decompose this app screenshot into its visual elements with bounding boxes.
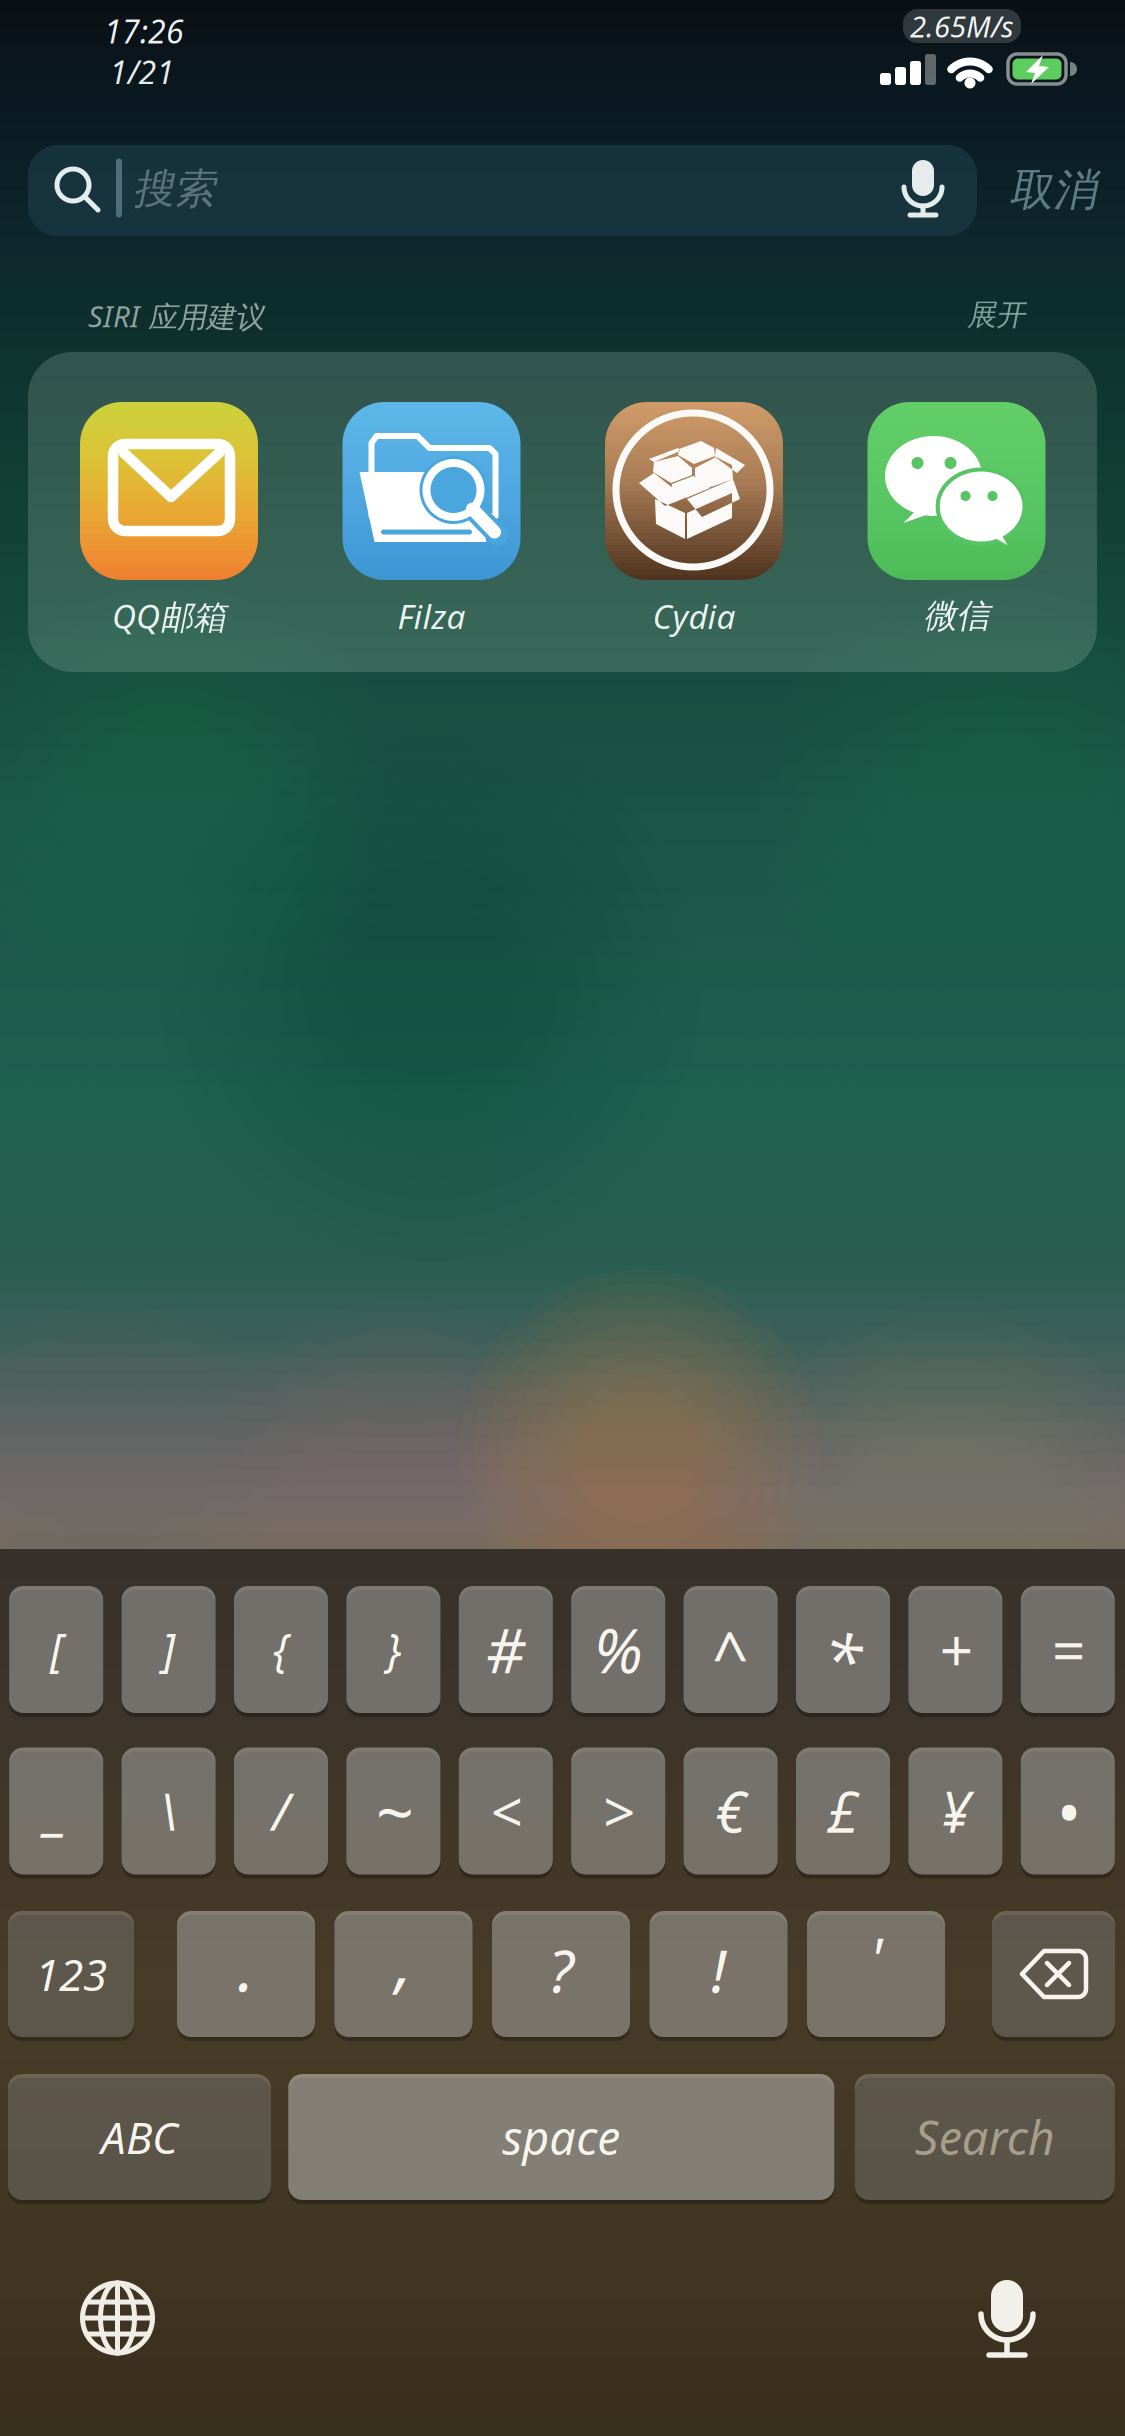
staticText: ?: [548, 1931, 573, 2009]
staticText: Cydia: [652, 594, 735, 638]
button[interactable]: 123: [8, 1911, 134, 2037]
staticText: SIRI 应用建议: [88, 296, 264, 335]
staticText: 123: [35, 1945, 107, 2003]
staticText: >: [602, 1774, 634, 1848]
staticText: space: [502, 2106, 620, 2168]
button[interactable]: Next keyboard: [77, 2278, 157, 2358]
staticText: ¥: [940, 1774, 971, 1848]
staticText: <: [490, 1774, 522, 1848]
button[interactable]: ~: [346, 1747, 440, 1874]
staticText: }: [385, 1619, 401, 1680]
staticText: 展开: [967, 297, 1025, 333]
button[interactable]: 微信: [867, 402, 1045, 642]
staticText: =: [1051, 1610, 1085, 1688]
button[interactable]: /: [234, 1747, 328, 1874]
button[interactable]: \: [122, 1747, 216, 1874]
button[interactable]: 取消: [988, 145, 1118, 235]
button[interactable]: ABC: [8, 2074, 271, 2200]
button[interactable]: ?: [492, 1911, 630, 2037]
button[interactable]: >: [571, 1747, 665, 1874]
button[interactable]: #: [459, 1586, 553, 1713]
button[interactable]: Cydia: [605, 402, 783, 642]
staticText: 1/21: [109, 51, 174, 93]
button[interactable]: ]: [122, 1586, 216, 1713]
button[interactable]: ': [807, 1911, 945, 2037]
button[interactable]: Dictate: [888, 148, 958, 228]
staticText: 2.65M/s: [910, 6, 1014, 45]
staticText: %: [594, 1609, 643, 1690]
button[interactable]: =: [1021, 1586, 1115, 1713]
button[interactable]: Filza: [342, 402, 520, 642]
staticText: ABC: [101, 2108, 178, 2166]
staticText: {: [273, 1619, 289, 1680]
staticText: 搜索: [133, 164, 215, 214]
staticText: 17:26: [104, 10, 184, 52]
staticText: ]: [162, 1619, 175, 1680]
staticText: ~: [374, 1767, 412, 1855]
button[interactable]: .: [177, 1911, 315, 2037]
button[interactable]: _: [9, 1747, 103, 1874]
button[interactable]: %: [571, 1586, 665, 1713]
staticText: QQ邮箱: [112, 594, 226, 638]
button[interactable]: QQ邮箱: [80, 402, 258, 642]
staticText: Search: [915, 2106, 1055, 2168]
button[interactable]: 展开: [951, 290, 1041, 340]
staticText: #: [486, 1609, 526, 1690]
staticText: \: [160, 1777, 178, 1845]
button[interactable]: ^: [684, 1586, 778, 1713]
button[interactable]: space: [288, 2074, 834, 2200]
staticText: Filza: [397, 594, 465, 638]
staticText: .: [237, 1922, 254, 2010]
staticText: [: [50, 1619, 63, 1680]
staticText: ': [869, 1919, 882, 1997]
staticText: •: [1056, 1768, 1080, 1853]
staticText: *: [824, 1612, 862, 1705]
staticText: +: [938, 1610, 972, 1688]
staticText: 取消: [1009, 163, 1097, 217]
button[interactable]: €: [684, 1747, 778, 1874]
staticText: _: [45, 1770, 67, 1844]
button[interactable]: +: [908, 1586, 1002, 1713]
button[interactable]: •: [1021, 1747, 1115, 1874]
staticText: !: [711, 1931, 726, 2009]
button[interactable]: *: [796, 1586, 890, 1713]
button[interactable]: ¥: [908, 1747, 1002, 1874]
staticText: ^: [712, 1611, 749, 1696]
button[interactable]: {: [234, 1586, 328, 1713]
button[interactable]: Search: [855, 2074, 1115, 2200]
button[interactable]: Delete: [992, 1911, 1115, 2037]
button[interactable]: }: [346, 1586, 440, 1713]
staticText: /: [272, 1777, 290, 1845]
staticText: £: [827, 1774, 858, 1848]
staticText: ,: [395, 1916, 412, 2004]
button[interactable]: £: [796, 1747, 890, 1874]
button[interactable]: !: [649, 1911, 787, 2037]
staticText: 微信: [923, 595, 989, 636]
button[interactable]: ,: [334, 1911, 472, 2037]
button[interactable]: Dictate: [962, 2280, 1052, 2360]
button[interactable]: 搜索: [28, 145, 977, 236]
staticText: €: [715, 1774, 746, 1848]
button[interactable]: <: [459, 1747, 553, 1874]
button[interactable]: [: [9, 1586, 103, 1713]
